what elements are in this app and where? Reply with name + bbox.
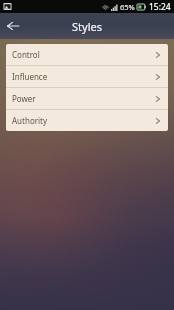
staticText: Influence xyxy=(12,71,155,82)
button[interactable]: Control xyxy=(6,44,168,65)
staticText: 65% xyxy=(120,2,135,12)
staticText: Authority xyxy=(12,115,155,126)
staticText: Power xyxy=(12,93,155,104)
button[interactable]: Authority xyxy=(6,110,168,131)
staticText: Control xyxy=(12,49,155,60)
button[interactable]: Influence xyxy=(6,66,168,87)
button[interactable]: Power xyxy=(6,88,168,109)
button[interactable]: Back xyxy=(0,13,26,39)
staticText: Styles xyxy=(72,19,102,34)
staticText: 15:24 xyxy=(149,1,171,13)
